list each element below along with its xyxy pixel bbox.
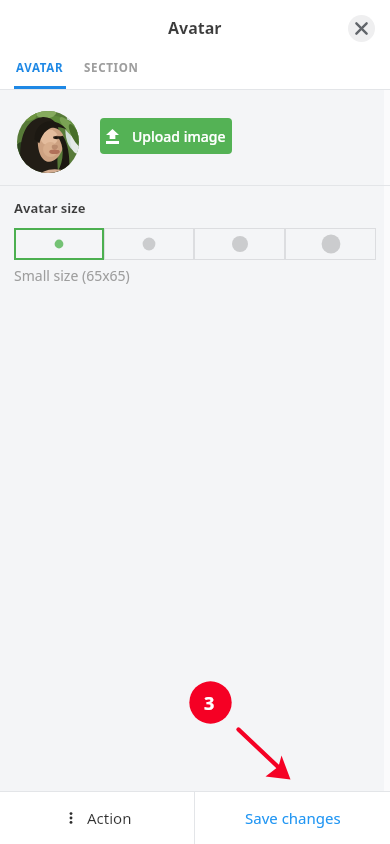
staticText: 3: [204, 691, 215, 716]
staticText: AVATAR: [16, 60, 64, 76]
staticText: Avatar size: [14, 199, 86, 217]
button[interactable]: Save changes: [195, 792, 390, 844]
button[interactable]: Extra large size: [285, 228, 376, 260]
button[interactable]: Close: [348, 15, 375, 42]
button[interactable]: Upload image: [100, 118, 232, 154]
staticText: Save changes: [245, 808, 341, 828]
button[interactable]: SECTION: [84, 52, 139, 89]
staticText: SECTION: [84, 60, 139, 76]
button[interactable]: Action: [0, 792, 194, 844]
staticText: Upload image: [132, 127, 226, 146]
button[interactable]: AVATAR: [14, 52, 66, 89]
staticText: Small size (65x65): [14, 266, 130, 285]
button[interactable]: Large size: [194, 228, 285, 260]
button[interactable]: Medium size: [104, 228, 194, 260]
staticText: Avatar: [168, 17, 222, 39]
staticText: Action: [87, 808, 132, 828]
button[interactable]: Avatar photo: [17, 111, 79, 173]
button[interactable]: Small size: [14, 228, 104, 260]
